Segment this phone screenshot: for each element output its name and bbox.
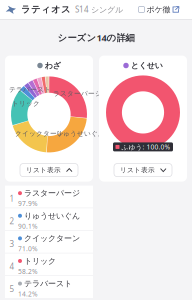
staticText: リスト表示	[26, 166, 61, 174]
staticText: 14.2%	[18, 289, 38, 298]
staticText: S14 シングル	[75, 4, 123, 15]
staticText: りゅうせいぐん	[24, 211, 80, 221]
staticText: テラバースト	[9, 85, 51, 94]
staticText: トリック	[24, 256, 56, 266]
staticText: 97.9%	[18, 199, 38, 208]
staticText: 58.2%	[18, 267, 38, 276]
staticText: 2	[9, 216, 14, 226]
button[interactable]: 5	[5, 276, 93, 298]
button[interactable]: リスト表示	[114, 164, 172, 177]
staticText: 90.1%	[18, 222, 38, 231]
staticText: 1	[9, 193, 14, 204]
button[interactable]: ポケ徹	[138, 5, 179, 14]
button[interactable]: 2	[5, 208, 93, 230]
staticText: ラスターパージ	[24, 188, 80, 198]
staticText: クイックターン	[24, 233, 80, 243]
button[interactable]: 3	[5, 231, 93, 253]
button[interactable]: 1	[5, 186, 93, 208]
staticText: トリック	[12, 99, 40, 108]
staticText: ラティオス	[21, 4, 71, 15]
staticText: わざ	[45, 61, 61, 70]
staticText: 5	[9, 284, 14, 294]
staticText: 3	[9, 238, 14, 249]
staticText: 4	[9, 261, 14, 272]
staticText: ラスターパージ	[53, 89, 102, 98]
button[interactable]: リスト表示	[20, 164, 78, 177]
staticText: ポケ徹	[146, 5, 170, 14]
staticText: とくせい	[131, 61, 163, 70]
staticText: ふゆう: 100.0%	[121, 142, 170, 151]
staticText: りゅうせいぐん	[56, 129, 105, 138]
staticText: クイックターン	[15, 129, 64, 138]
button[interactable]: 4	[5, 253, 93, 275]
staticText: シーズン14の詳細	[57, 31, 134, 44]
staticText: テラバースト	[24, 279, 72, 288]
staticText: 71.0%	[18, 244, 38, 253]
staticText: リスト表示	[120, 166, 155, 174]
